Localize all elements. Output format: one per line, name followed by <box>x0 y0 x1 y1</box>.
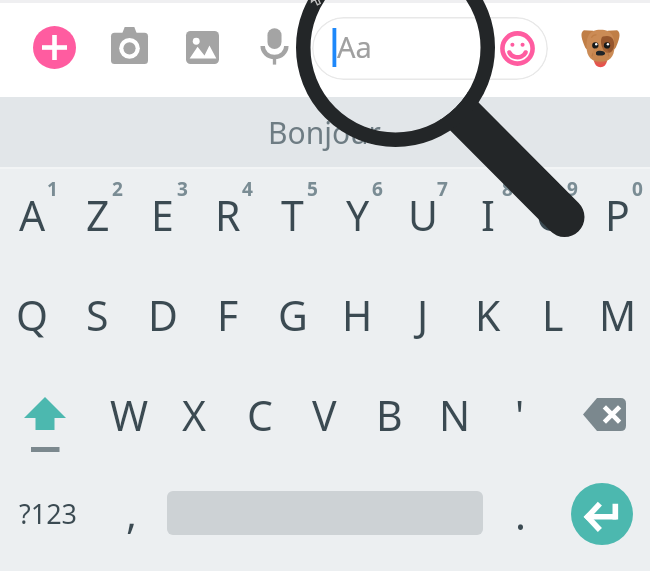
button[interactable]: Aa <box>312 17 548 80</box>
staticText: F <box>217 287 239 343</box>
button[interactable]: Z <box>65 170 130 262</box>
button[interactable]: R <box>195 170 260 262</box>
staticText: ?123 <box>19 495 78 532</box>
button[interactable]: B <box>357 369 422 461</box>
staticText: 7 <box>437 176 448 202</box>
button[interactable]: M <box>585 269 650 361</box>
button[interactable]: Shift <box>0 369 90 461</box>
staticText: D <box>148 287 178 343</box>
button[interactable]: , <box>100 465 162 560</box>
staticText: 1 <box>47 176 58 202</box>
staticText: C <box>247 387 273 443</box>
button[interactable]: E <box>130 170 195 262</box>
staticText: 3 <box>177 176 188 202</box>
staticText: R <box>215 187 241 243</box>
staticText: Y <box>346 187 370 243</box>
staticText: 8 <box>502 176 513 202</box>
button[interactable]: . <box>490 465 550 560</box>
staticText: L <box>542 287 564 343</box>
button[interactable]: Gallery <box>186 31 219 64</box>
button[interactable]: Emoji <box>500 31 535 66</box>
staticText: B <box>376 387 403 443</box>
staticText: H <box>342 287 373 343</box>
staticText: M <box>599 287 637 343</box>
staticText: K <box>475 287 501 343</box>
staticText: 5 <box>307 176 318 202</box>
staticText: N <box>439 387 471 443</box>
staticText: 6 <box>372 176 383 202</box>
button[interactable]: Camera <box>111 27 148 64</box>
staticText: J <box>417 287 429 343</box>
button[interactable]: I <box>455 170 520 262</box>
button[interactable]: W <box>97 369 162 461</box>
button[interactable]: Q <box>0 269 65 361</box>
button[interactable]: F <box>195 269 260 361</box>
staticText: , <box>126 485 137 541</box>
staticText: 2 <box>112 176 123 202</box>
staticText: 4 <box>242 176 253 202</box>
button[interactable]: J <box>390 269 455 361</box>
staticText: V <box>312 387 337 443</box>
button[interactable]: S <box>65 269 130 361</box>
staticText: U <box>408 187 438 243</box>
button[interactable]: Backspace <box>560 369 650 461</box>
button[interactable]: U <box>390 170 455 262</box>
staticText: Aa <box>337 27 372 66</box>
staticText: Z <box>86 187 110 243</box>
staticText: Bonjour <box>268 112 382 153</box>
button[interactable]: L <box>520 269 585 361</box>
button[interactable]: N <box>422 369 487 461</box>
staticText: 9 <box>567 176 578 202</box>
button[interactable]: K <box>455 269 520 361</box>
button[interactable]: O <box>520 170 585 262</box>
button[interactable]: Enter <box>571 483 633 545</box>
staticText: E <box>151 187 174 243</box>
staticText: O <box>536 187 569 243</box>
staticText: ' <box>515 387 525 443</box>
staticText: 0 <box>632 176 643 202</box>
staticText: . <box>515 486 526 542</box>
staticText: X <box>182 387 207 443</box>
button[interactable]: X <box>162 369 227 461</box>
button[interactable]: D <box>130 269 195 361</box>
button[interactable]: G <box>260 269 325 361</box>
button[interactable]: ?123 <box>0 465 96 560</box>
button[interactable]: Bonjour <box>0 97 650 167</box>
button[interactable]: H <box>325 269 390 361</box>
staticText: W <box>110 387 149 443</box>
staticText: I <box>481 187 495 243</box>
staticText: G <box>278 287 308 343</box>
button[interactable]: Voice input <box>256 27 293 67</box>
button[interactable]: Y <box>325 170 390 262</box>
staticText: P <box>605 187 630 243</box>
button[interactable]: P <box>585 170 650 262</box>
button[interactable]: ' <box>487 369 552 461</box>
button[interactable]: T <box>260 170 325 262</box>
button[interactable]: C <box>227 369 292 461</box>
button[interactable]: A <box>0 170 65 262</box>
staticText: Q <box>16 287 49 343</box>
staticText: S <box>86 287 109 343</box>
staticText: T <box>281 187 304 243</box>
button[interactable]: V <box>292 369 357 461</box>
button[interactable]: Add <box>33 26 76 69</box>
staticText: A <box>19 187 46 243</box>
button[interactable]: Sticker <box>578 24 623 69</box>
